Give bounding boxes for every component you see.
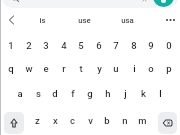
button[interactable]: v	[81, 109, 99, 131]
button[interactable]: b	[98, 109, 116, 131]
staticText: r	[62, 63, 66, 74]
staticText: q	[8, 63, 14, 74]
button[interactable]: 7	[107, 34, 125, 56]
staticText: is	[39, 16, 46, 25]
button[interactable]: Shift	[4, 112, 24, 134]
staticText: z	[35, 115, 40, 126]
staticText: 6	[96, 40, 102, 51]
staticText: m	[138, 115, 147, 126]
button[interactable]: 5	[72, 34, 90, 56]
button[interactable]: s	[29, 82, 47, 104]
staticText: y	[97, 63, 102, 74]
staticText: 0	[166, 40, 172, 51]
staticText: d	[52, 88, 58, 99]
button[interactable]: x	[46, 109, 64, 131]
staticText: c	[70, 115, 75, 126]
staticText: 5	[78, 40, 84, 51]
staticText: u	[113, 63, 119, 74]
button[interactable]: o	[142, 57, 160, 79]
button[interactable]: l	[151, 82, 169, 104]
staticText: o	[148, 63, 154, 74]
button[interactable]: y	[90, 57, 108, 79]
button[interactable]: t	[72, 57, 90, 79]
button[interactable]: 3	[37, 34, 55, 56]
staticText: t	[79, 63, 83, 74]
button[interactable]: Previous suggestions	[0, 10, 22, 30]
button[interactable]: a	[11, 82, 29, 104]
staticText: use	[78, 16, 91, 25]
staticText: w	[25, 63, 33, 74]
staticText: a	[17, 88, 23, 99]
button[interactable]: 0	[160, 34, 178, 56]
button[interactable]: i	[125, 57, 143, 79]
staticText: 2	[26, 40, 32, 51]
button[interactable]: 4	[55, 34, 73, 56]
button[interactable]: use	[67, 10, 101, 30]
staticText: f	[71, 88, 75, 99]
button[interactable]: 6	[90, 34, 108, 56]
button[interactable]: 9	[142, 34, 160, 56]
staticText: 7	[113, 40, 119, 51]
staticText: s	[36, 88, 41, 99]
staticText: usa	[121, 16, 134, 25]
button[interactable]: z	[28, 109, 46, 131]
staticText: i	[133, 63, 136, 74]
button[interactable]: is	[25, 10, 59, 30]
button[interactable]: w	[20, 57, 38, 79]
staticText: k	[141, 88, 146, 99]
other: Clear query	[141, 0, 148, 3]
staticText: 3	[43, 40, 49, 51]
button[interactable]: m	[133, 109, 151, 131]
staticText: 9	[148, 40, 154, 51]
button[interactable]: f	[64, 82, 82, 104]
staticText: 8	[131, 40, 137, 51]
button[interactable]: j	[116, 82, 134, 104]
staticText: n	[122, 115, 128, 126]
other: Search	[11, 0, 19, 2]
button[interactable]: p	[160, 57, 178, 79]
button[interactable]: h	[99, 82, 117, 104]
button[interactable]: 1	[2, 34, 20, 56]
button[interactable]: c	[63, 109, 81, 131]
staticText: 1	[8, 40, 14, 51]
staticText: e	[43, 63, 49, 74]
button[interactable]: u	[107, 57, 125, 79]
staticText: j	[124, 88, 127, 99]
staticText: h	[105, 88, 111, 99]
button[interactable]: 2	[20, 34, 38, 56]
button[interactable]: d	[46, 82, 64, 104]
button[interactable]	[2, 0, 178, 8]
staticText: p	[166, 63, 172, 74]
button[interactable]: e	[37, 57, 55, 79]
staticText: x	[53, 115, 58, 126]
button[interactable]: q	[2, 57, 20, 79]
button[interactable]: Backspace	[158, 112, 177, 134]
button[interactable]: 8	[125, 34, 143, 56]
button[interactable]: usa	[110, 10, 144, 30]
staticText: v	[88, 115, 93, 126]
staticText: b	[104, 115, 110, 126]
staticText: l	[159, 88, 162, 99]
button[interactable]: k	[134, 82, 152, 104]
button[interactable]: g	[81, 82, 99, 104]
button[interactable]: r	[55, 57, 73, 79]
button[interactable]: More options	[159, 10, 180, 30]
button[interactable]: n	[116, 109, 134, 131]
button[interactable]: Account	[153, 0, 174, 7]
staticText: 4	[61, 40, 67, 51]
staticText: g	[87, 88, 93, 99]
